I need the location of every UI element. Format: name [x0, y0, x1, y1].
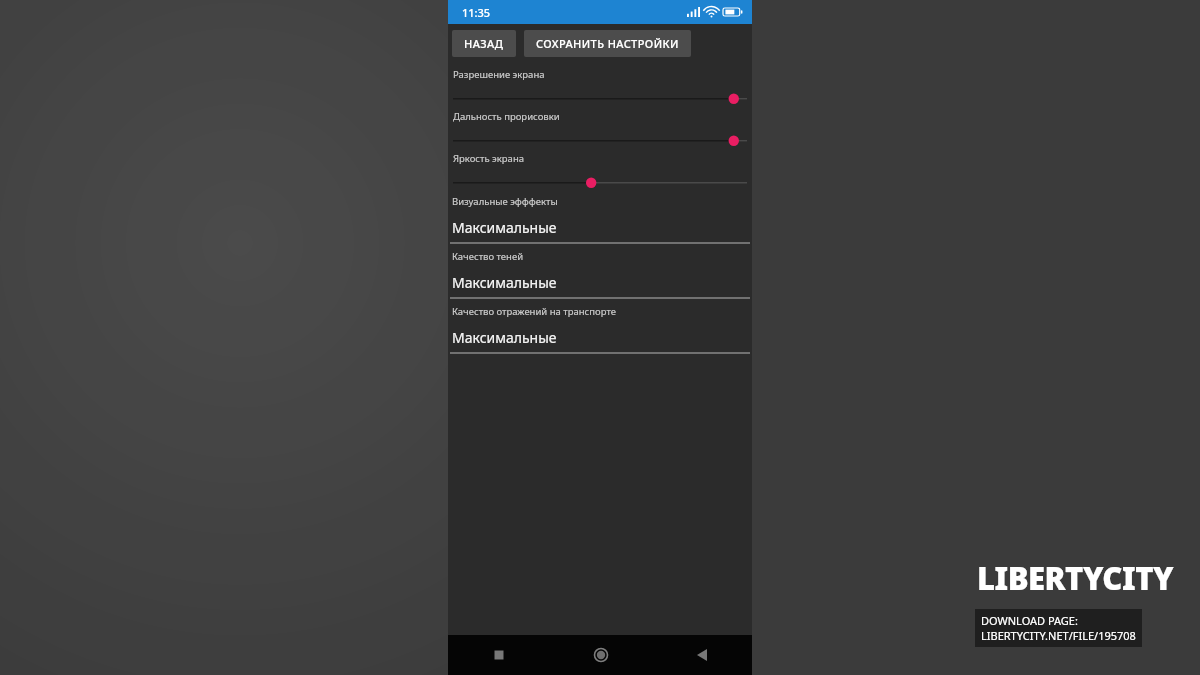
button[interactable]: СОХРАНИТЬ НАСТРОЙКИ	[524, 30, 691, 57]
button[interactable]: LIBERTYCITY	[975, 555, 1176, 601]
staticText: СОХРАНИТЬ НАСТРОЙКИ	[536, 36, 679, 51]
staticText: Качество отражений на транспорте	[452, 305, 616, 318]
staticText: Разрешение экрана	[453, 68, 545, 81]
button[interactable]: Back	[651, 635, 752, 675]
staticText: LIBERTYCITY.NET/FILE/195708	[981, 628, 1136, 643]
button[interactable]: Дальность прорисовки	[448, 105, 752, 147]
staticText: НАЗАД	[464, 36, 504, 51]
staticText: Максимальные	[452, 273, 557, 292]
staticText: Визуальные эфффекты	[452, 195, 558, 208]
staticText: Максимальные	[452, 218, 557, 237]
staticText: Качество теней	[452, 250, 524, 263]
button[interactable]: Яркость экрана	[448, 147, 752, 189]
button[interactable]: Home	[550, 635, 651, 675]
button[interactable]: НАЗАД	[452, 30, 516, 57]
button[interactable]: Разрешение экрана	[448, 63, 752, 105]
button[interactable]: Качество отражений на транспорте	[448, 299, 752, 354]
staticText: Дальность прорисовки	[453, 110, 560, 123]
staticText: Максимальные	[452, 328, 557, 347]
staticText: LIBERTYCITY	[977, 557, 1174, 599]
button[interactable]: Качество теней	[448, 244, 752, 299]
button[interactable]: Recent apps	[448, 635, 550, 675]
button[interactable]: DOWNLOAD PAGE:	[975, 609, 1142, 647]
staticText: Яркость экрана	[453, 152, 524, 165]
button[interactable]: Визуальные эфффекты	[448, 189, 752, 244]
staticText: 11:35	[462, 5, 491, 20]
staticText: DOWNLOAD PAGE:	[981, 613, 1078, 628]
